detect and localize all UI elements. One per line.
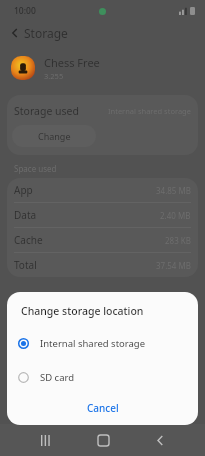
staticText: Cancel	[87, 401, 119, 415]
button[interactable]: Cancel	[7, 396, 198, 420]
staticText: Total	[14, 258, 37, 272]
staticText: Change storage location	[21, 304, 144, 318]
staticText: Storage	[24, 25, 68, 41]
staticText: 37.54 MB	[156, 260, 191, 271]
staticText: Internal shared storage	[40, 337, 146, 350]
staticText: Cache	[14, 233, 43, 247]
staticText: 283 KB	[165, 235, 191, 246]
staticText: Clear cache	[127, 291, 176, 303]
staticText: Data	[14, 208, 37, 222]
staticText: 10:00	[14, 5, 36, 17]
staticText: Clear data	[32, 291, 76, 303]
button[interactable]: Back	[147, 427, 173, 453]
button[interactable]: SD card	[7, 367, 198, 387]
staticText: 3.255	[44, 71, 64, 81]
button[interactable]: Back	[8, 26, 22, 40]
button[interactable]: Clear data	[12, 287, 96, 307]
staticText: 2.40 MB	[160, 210, 191, 221]
button[interactable]: Change	[12, 125, 96, 147]
staticText: Chess Free	[44, 55, 100, 70]
button[interactable]: Chess Free	[0, 50, 205, 86]
staticText: App	[14, 183, 33, 197]
staticText: Internal shared storage	[108, 106, 191, 116]
button[interactable]: Recent apps	[32, 427, 58, 453]
staticText: 34.85 MB	[156, 185, 191, 196]
staticText: Storage used	[14, 104, 79, 118]
staticText: Change	[38, 130, 71, 142]
button[interactable]: Home	[90, 427, 116, 453]
button[interactable]: Internal shared storage	[7, 333, 198, 353]
staticText: SD card	[40, 371, 75, 384]
staticText: Space used	[14, 163, 57, 174]
button[interactable]: Clear cache	[109, 287, 193, 307]
